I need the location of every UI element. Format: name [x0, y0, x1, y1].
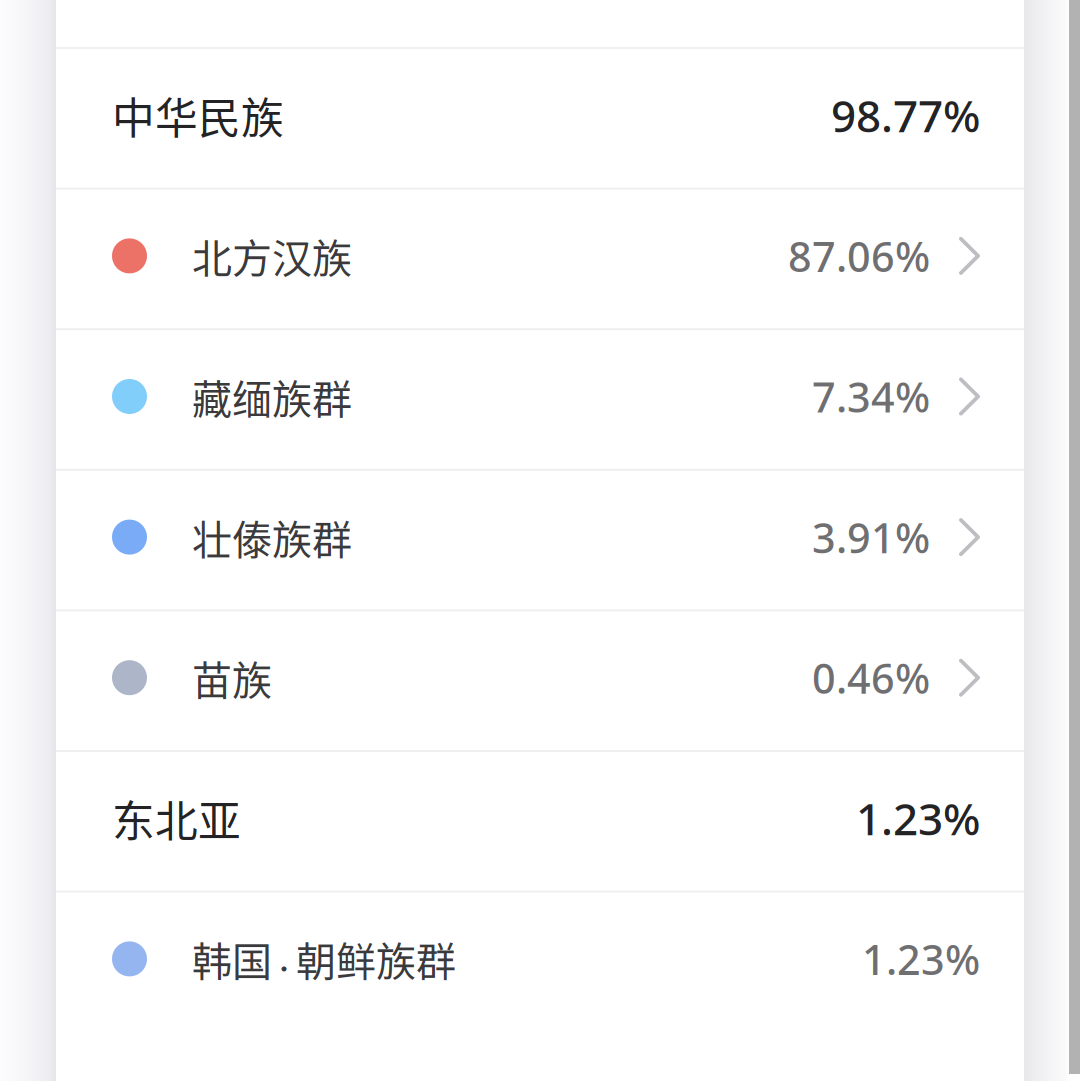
staticText: 东北亚	[112, 787, 241, 849]
staticText: 0.46%	[812, 650, 930, 705]
staticText: 1.23%	[856, 789, 980, 847]
staticText: 藏缅族群	[192, 367, 352, 425]
staticText: 中华民族	[112, 84, 284, 146]
button[interactable]: 壮傣族群	[56, 471, 1024, 609]
button[interactable]: 韩国·朝鲜族群	[56, 893, 1024, 1031]
staticText: 3.91%	[812, 510, 930, 565]
button[interactable]: 藏缅族群	[56, 330, 1024, 469]
button[interactable]: 北方汉族	[56, 190, 1024, 328]
staticText: 北方汉族	[192, 227, 352, 285]
staticText: 87.06%	[788, 228, 930, 283]
staticText: 98.77%	[831, 86, 980, 144]
staticText: 7.34%	[812, 369, 930, 424]
staticText: 韩国·朝鲜族群	[192, 931, 456, 987]
button[interactable]: 苗族	[56, 611, 1024, 750]
staticText: 1.23%	[862, 931, 980, 986]
staticText: 壮傣族群	[192, 508, 352, 566]
staticText: 苗族	[192, 649, 272, 707]
